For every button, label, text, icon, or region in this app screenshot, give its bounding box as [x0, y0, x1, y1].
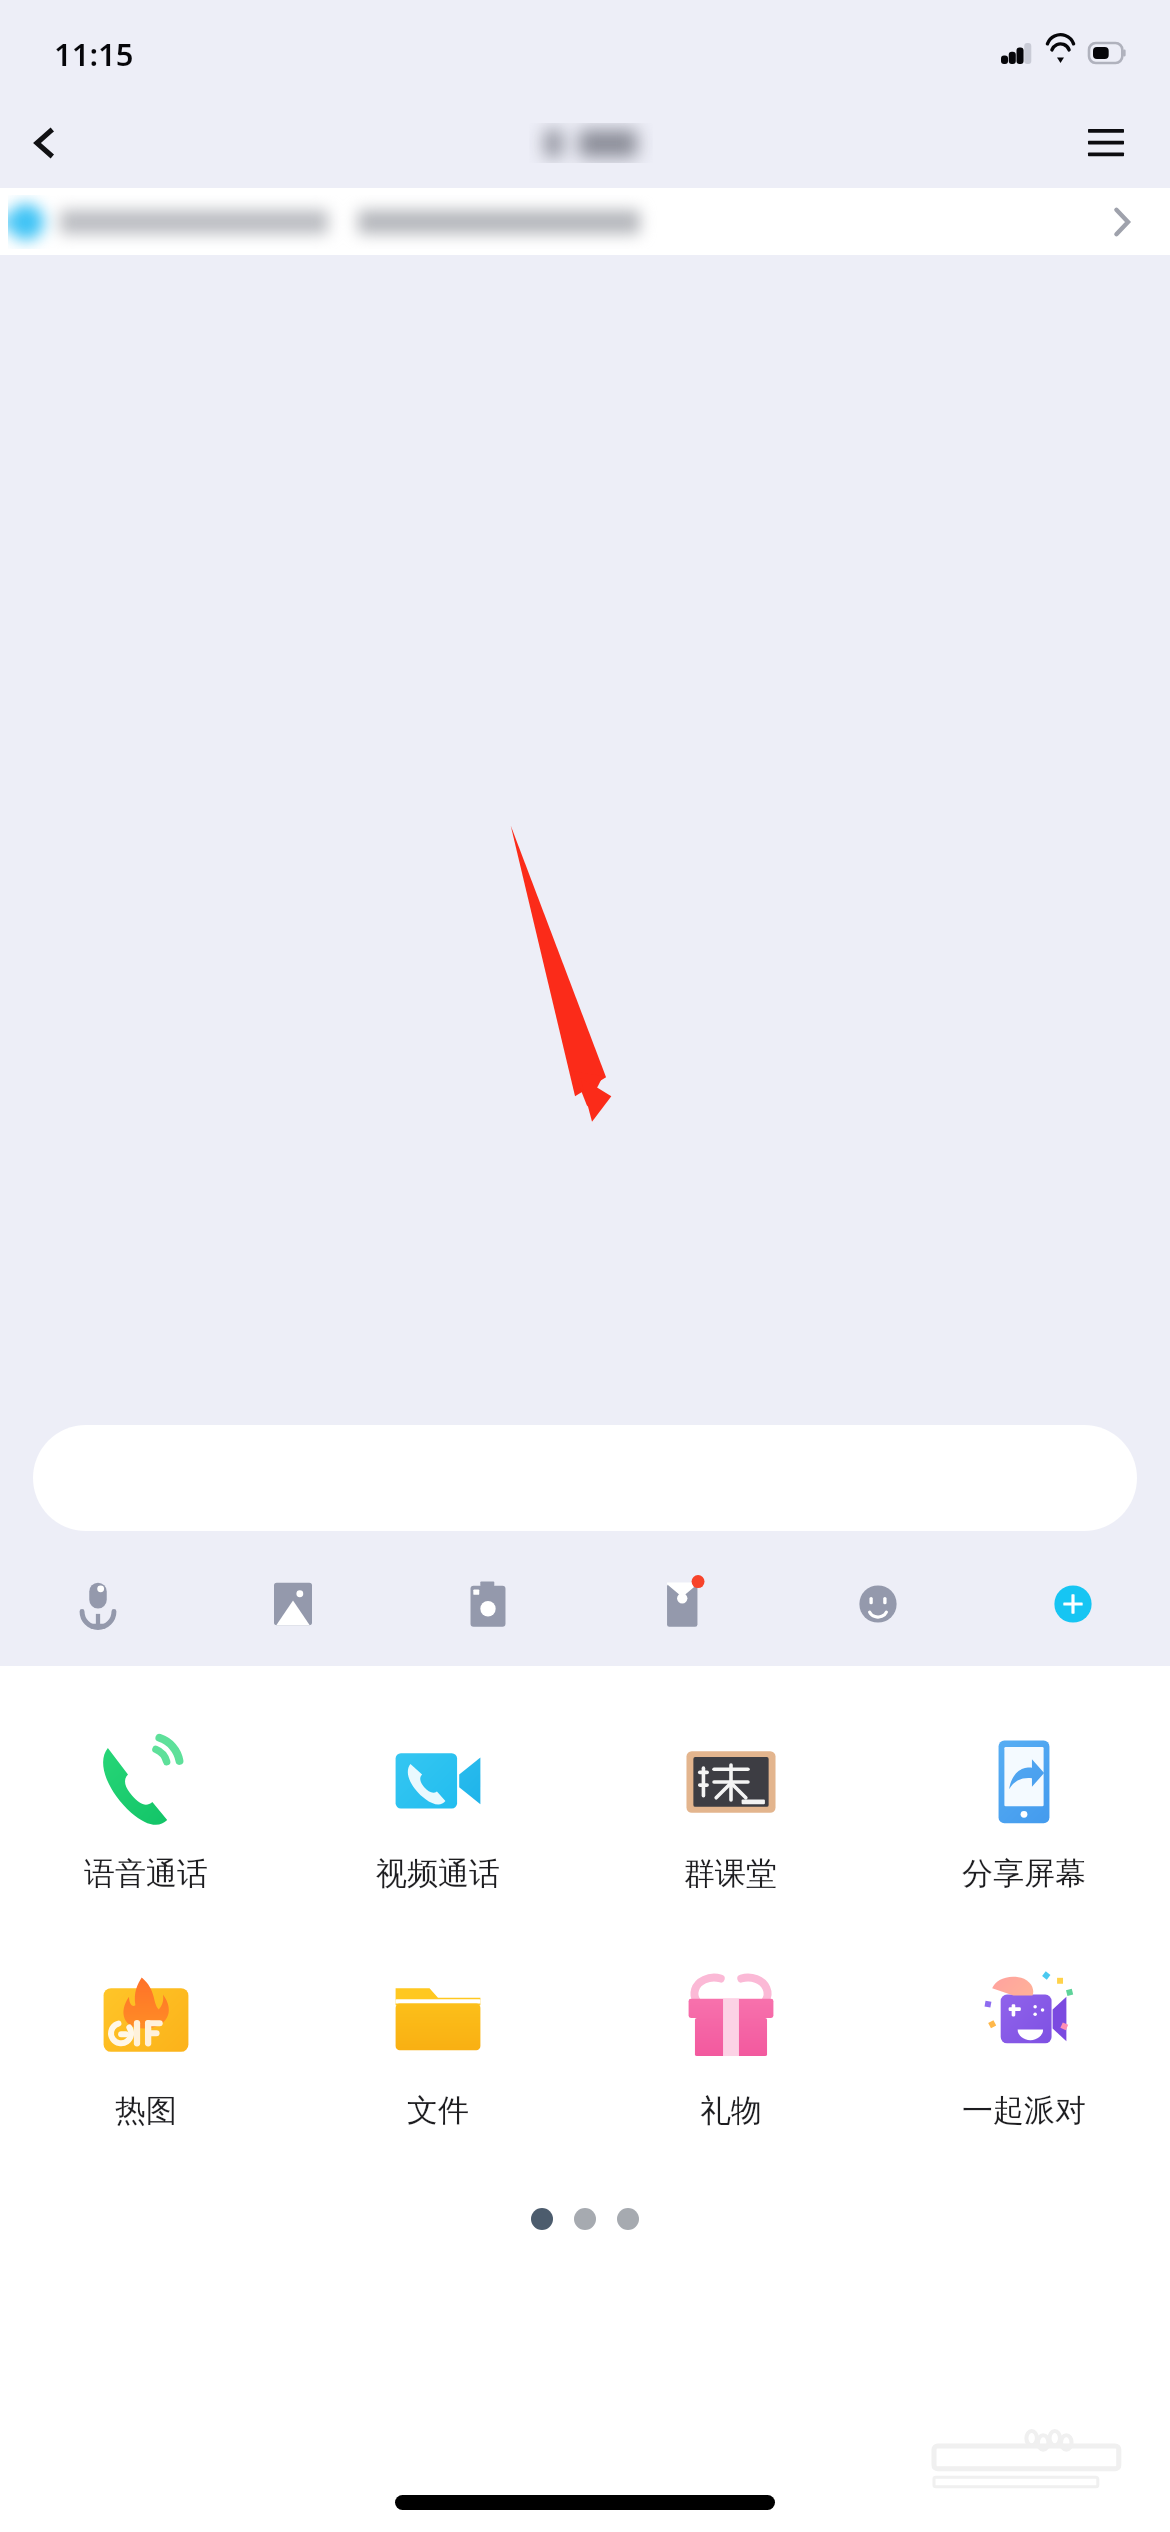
button[interactable]: 分享屏幕: [877, 1724, 1170, 1899]
staticText: 11:15: [54, 33, 134, 75]
staticText: 群课堂: [684, 1854, 777, 1893]
staticText: 礼物: [700, 2091, 762, 2130]
button[interactable]: 热图: [0, 1961, 292, 2136]
button[interactable]: [0, 188, 1170, 255]
button[interactable]: Voice message: [0, 1542, 195, 1666]
staticText: 分享屏幕: [962, 1854, 1086, 1893]
button[interactable]: More: [975, 1542, 1170, 1666]
button[interactable]: Menu: [1068, 105, 1144, 181]
button[interactable]: 文件: [292, 1961, 584, 2136]
button[interactable]: 群课堂: [584, 1724, 877, 1899]
button[interactable]: Back: [0, 99, 88, 187]
staticText: 语音通话: [84, 1854, 208, 1893]
button[interactable]: Red packet: [585, 1542, 780, 1666]
button[interactable]: 视频通话: [292, 1724, 584, 1899]
staticText: 一起派对: [962, 2091, 1086, 2130]
button[interactable]: Emoji: [780, 1542, 975, 1666]
staticText: 视频通话: [376, 1854, 500, 1893]
staticText: 文件: [407, 2091, 469, 2130]
button[interactable]: 一起派对: [877, 1961, 1170, 2136]
button[interactable]: Photos: [195, 1542, 390, 1666]
button[interactable]: 礼物: [584, 1961, 877, 2136]
staticText: 热图: [115, 2091, 177, 2130]
button[interactable]: Camera: [390, 1542, 585, 1666]
button[interactable]: 语音通话: [0, 1724, 292, 1899]
